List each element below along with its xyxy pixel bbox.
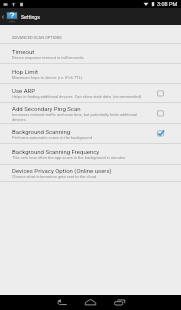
button[interactable]: Hop Limit (0, 64, 181, 83)
staticText: ADVANCED SCAN OPTIONS (12, 35, 62, 40)
staticText: Background Scanning (12, 128, 71, 135)
button[interactable]: Background Scanning (0, 124, 181, 143)
staticText: Use ARP (12, 87, 36, 94)
button[interactable]: Disabled (155, 108, 166, 119)
staticText: Helps in finding additional devices. Can… (12, 94, 142, 99)
button[interactable]: Add Secondary Ping Scan (0, 103, 181, 123)
staticText: Background Scanning Frequency (12, 148, 100, 155)
staticText: Settings (21, 14, 40, 20)
button[interactable]: Use ARP (0, 84, 181, 102)
button[interactable]: Background Scanning Frequency (0, 144, 181, 164)
staticText: Device response timeout in milliseconds (12, 55, 84, 60)
staticText: Hop Limit (12, 68, 38, 75)
button[interactable]: Back (0, 8, 6, 25)
button[interactable]: Disabled (155, 88, 166, 99)
staticText: 3:08 PM (157, 1, 178, 7)
button[interactable]: Back (47, 295, 76, 310)
staticText: Maximum hops to device (i.e. IPv6 TTL) (12, 75, 83, 80)
staticText: Timeout (12, 48, 35, 55)
button[interactable]: Enabled (155, 128, 166, 139)
staticText: Add Secondary Ping Scan (12, 105, 81, 112)
staticText: Devices Privacy Option (Online users) (12, 167, 112, 174)
staticText: Choose what information gets sent to the… (12, 174, 97, 179)
staticText: This sets how often the app scans in the… (12, 155, 126, 160)
button[interactable]: Home (76, 295, 105, 310)
staticText: Increases network traffic and scan time,… (12, 112, 150, 122)
button[interactable]: Timeout (0, 44, 181, 63)
button[interactable]: Devices Privacy Option (Online users) (0, 165, 181, 181)
button[interactable]: Recent apps (105, 295, 134, 310)
staticText: Performs automatic scans in the backgrou… (12, 135, 92, 140)
